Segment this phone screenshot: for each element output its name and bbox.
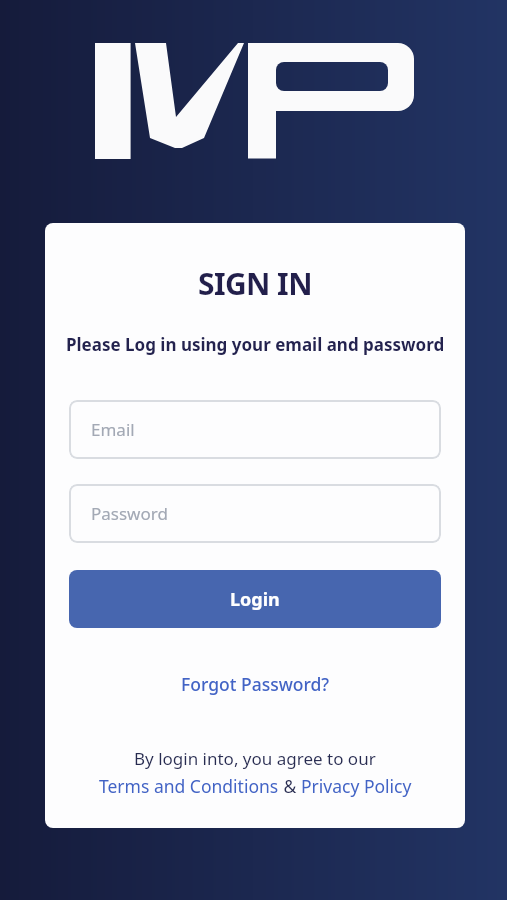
staticText: Please Log in using your email and passw… — [66, 333, 445, 356]
button[interactable]: Terms and Conditions — [99, 774, 279, 798]
staticText: Forgot Password? — [181, 672, 330, 696]
button[interactable]: Forgot Password? — [181, 672, 330, 696]
staticText: Email — [91, 418, 135, 441]
button[interactable]: Login — [69, 570, 441, 628]
staticText: Privacy Policy — [301, 774, 412, 798]
staticText: By login into, you agree to our — [134, 747, 376, 770]
staticText: & — [279, 774, 301, 798]
button[interactable]: Password — [69, 484, 441, 543]
staticText: Terms and Conditions — [99, 774, 279, 798]
staticText: Login — [230, 587, 280, 612]
staticText: Password — [91, 502, 168, 525]
button[interactable]: Email — [69, 400, 441, 459]
staticText: SIGN IN — [198, 263, 312, 303]
button[interactable]: Privacy Policy — [301, 774, 412, 798]
